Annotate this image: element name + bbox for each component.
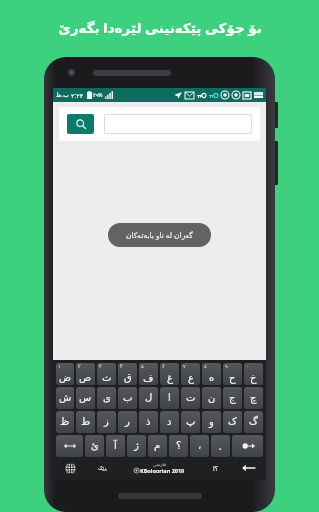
button[interactable]: ۱ [56,363,74,385]
staticText: ؟ [176,440,182,452]
staticText: ۶ [162,363,165,369]
staticText: ذ [146,416,151,428]
staticText: و [209,416,214,428]
staticText: ی [103,392,111,404]
staticText: ا [168,392,171,404]
button[interactable]: ن [202,387,221,409]
staticText: ، [198,440,202,452]
button[interactable]: Backspace [232,435,263,457]
staticText: . [219,439,222,453]
staticText: ۷ [183,363,186,369]
button[interactable]: ز [97,411,116,433]
button[interactable]: ر [118,411,137,433]
button[interactable]: ۶ [160,363,179,385]
staticText: ث [102,372,112,384]
staticText: ت [186,392,196,404]
button[interactable]: و [202,411,221,433]
staticText: ۸ [204,363,207,369]
staticText: ه [209,372,215,384]
button[interactable]: چ [244,387,263,409]
button[interactable]: Symbols [200,458,232,478]
button[interactable]: ش [56,387,74,409]
staticText: ۲۹% [93,92,103,99]
button[interactable]: . [211,435,230,457]
staticText: ب.ظ [56,91,69,99]
staticText: ل [145,392,153,404]
button[interactable]: ژ [127,435,146,457]
staticText: گ [249,416,258,428]
staticText: ۵ [141,363,144,369]
staticText: چ [250,392,257,404]
button[interactable]: Change language [55,458,86,478]
staticText: ۹ [225,363,228,369]
button[interactable]: س [76,387,95,409]
button[interactable]: ۴ [118,363,137,385]
staticText: ڕێک [98,465,107,471]
staticText: ئ [91,440,99,452]
button[interactable]: Space [118,458,200,478]
staticText: غ [167,372,173,384]
button[interactable]: Enter [232,458,264,478]
staticText: س [79,392,92,404]
staticText: KBoloorian 2019 [140,467,185,474]
staticText: د [167,416,172,428]
button[interactable]: گەران لە ناو بابەتەکان [108,223,211,247]
button[interactable]: ا [160,387,179,409]
button[interactable]: م [148,435,167,457]
button[interactable]: ۳ [97,363,116,385]
staticText: ژ [134,440,139,452]
staticText: ف [143,372,154,384]
staticText: ط [81,416,91,428]
staticText: ۲:۲۴ [71,91,84,100]
staticText: !؟ [213,464,219,473]
staticText: پ [186,416,196,428]
button[interactable]: ۸ [202,363,221,385]
button[interactable]: ی [97,387,116,409]
staticText: ز [104,416,109,428]
button[interactable]: ک [223,411,242,433]
staticText: ۰ [246,363,249,369]
button[interactable]: ظ [56,411,74,433]
staticText: گەران لە ناو بابەتەکان [126,230,193,240]
staticText: ک [228,416,237,428]
button[interactable]: ۷ [181,363,200,385]
button[interactable]: Search field [104,114,252,134]
button[interactable]: ؟ [169,435,188,457]
button[interactable]: د [160,411,179,433]
button[interactable]: ئ [85,435,104,457]
button[interactable]: Move cursor [56,435,83,457]
staticText: ۱ [58,363,61,369]
staticText: ق [124,372,132,384]
staticText: ض [59,372,72,384]
staticText: م [154,440,161,452]
staticText: ح [229,372,236,384]
button[interactable]: ، [190,435,209,457]
button[interactable]: ت [181,387,200,409]
button[interactable]: آ [106,435,125,457]
button[interactable]: ب [118,387,137,409]
button[interactable]: ۹ [223,363,242,385]
staticText: ب [123,392,133,404]
button[interactable]: پ [181,411,200,433]
button[interactable]: ذ [139,411,158,433]
staticText: ج [229,392,236,404]
staticText: ش [59,392,72,404]
button[interactable]: Search [67,114,94,134]
staticText: بۆ جۆکی پێکەنینی لێرەدا بگەرێ [58,19,262,37]
staticText: ۲ [78,363,81,369]
staticText: خ [250,372,257,384]
button[interactable]: گ [244,411,263,433]
staticText: ر [125,416,130,428]
staticText: آ [114,440,117,452]
button[interactable]: ل [139,387,158,409]
button[interactable]: ۲ [76,363,95,385]
staticText: ع [188,372,194,384]
button[interactable]: ج [223,387,242,409]
staticText: فارسی [153,462,167,467]
button[interactable]: ط [76,411,95,433]
staticText: ظ [60,416,70,428]
button[interactable]: ۵ [139,363,158,385]
staticText: ۳ [99,363,102,369]
button[interactable]: ۰ [244,363,263,385]
button[interactable]: Settings [86,458,118,478]
